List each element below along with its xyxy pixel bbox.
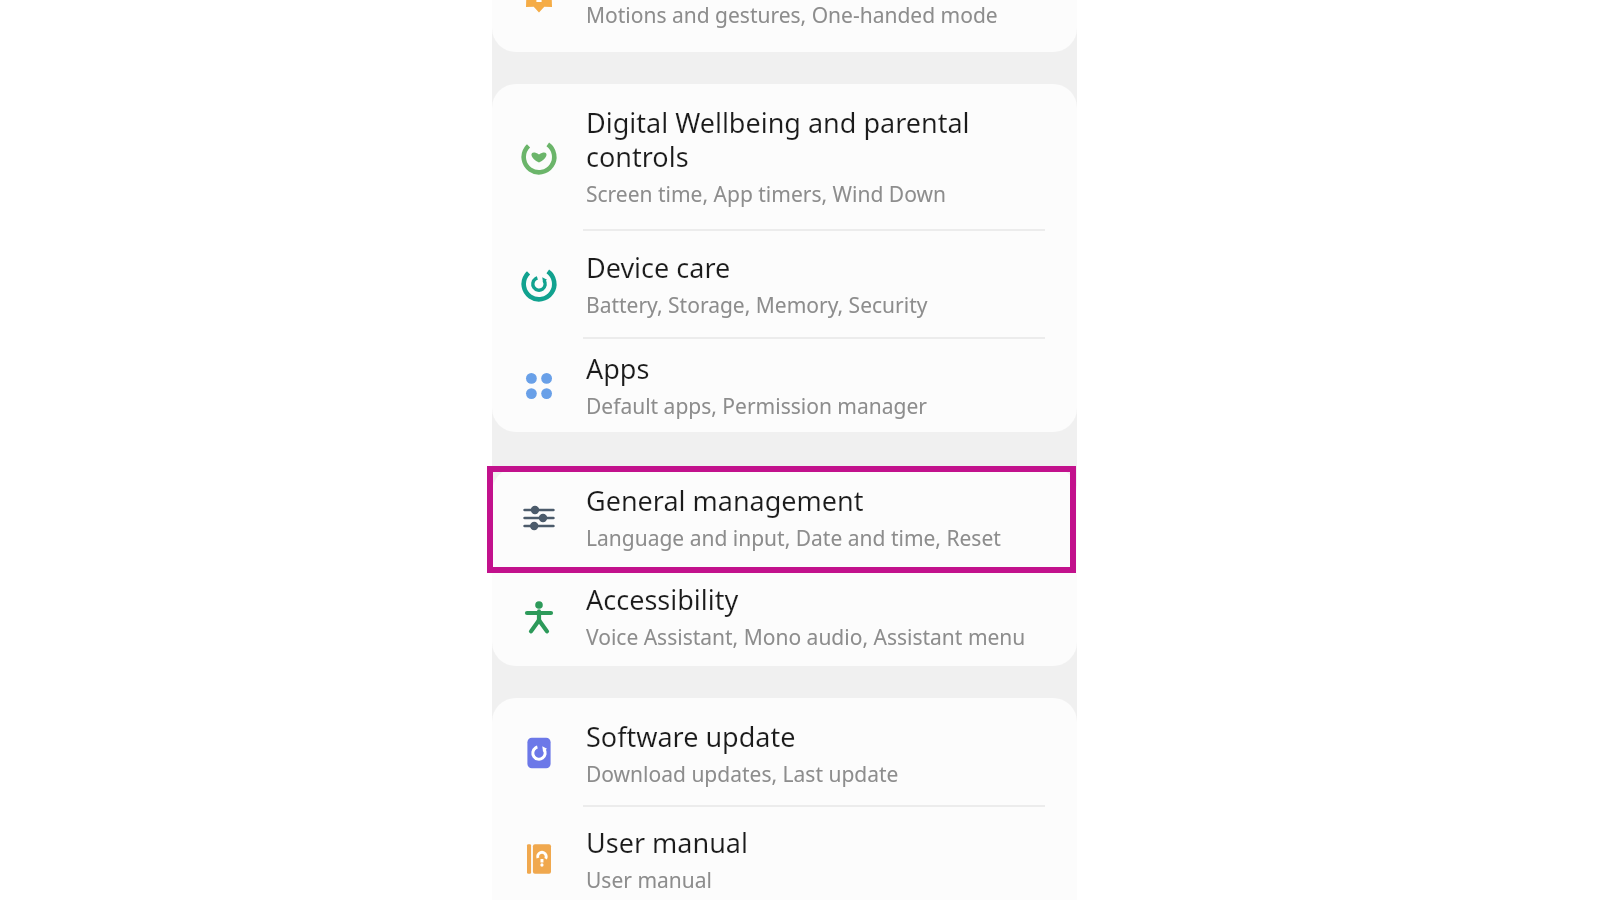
- button[interactable]: Advanced features: [492, 0, 1077, 44]
- staticText: Device care: [586, 249, 731, 286]
- staticText: Voice Assistant, Mono audio, Assistant m…: [586, 623, 1026, 652]
- button[interactable]: Apps: [492, 339, 1077, 432]
- button[interactable]: Device care: [492, 231, 1077, 337]
- staticText: Digital Wellbeing and parental controls: [586, 104, 970, 175]
- staticText: Screen time, App timers, Wind Down: [586, 180, 946, 209]
- staticText: Default apps, Permission manager: [586, 392, 927, 421]
- staticText: Battery, Storage, Memory, Security: [586, 291, 928, 320]
- button[interactable]: Digital Wellbeing and parental controls: [492, 84, 1077, 229]
- button[interactable]: User manual: [492, 807, 1077, 900]
- button[interactable]: Accessibility: [492, 567, 1077, 666]
- staticText: Language and input, Date and time, Reset: [586, 524, 1001, 553]
- staticText: Apps: [586, 350, 650, 387]
- staticText: Motions and gestures, One-handed mode: [586, 1, 998, 30]
- button[interactable]: Software update: [492, 701, 1077, 805]
- staticText: User manual: [586, 866, 712, 895]
- staticText: General management: [586, 482, 864, 519]
- staticText: Software update: [586, 718, 796, 755]
- staticText: Accessibility: [586, 581, 739, 618]
- button[interactable]: General management: [492, 468, 1077, 567]
- staticText: Download updates, Last update: [586, 760, 899, 789]
- staticText: User manual: [586, 824, 748, 861]
